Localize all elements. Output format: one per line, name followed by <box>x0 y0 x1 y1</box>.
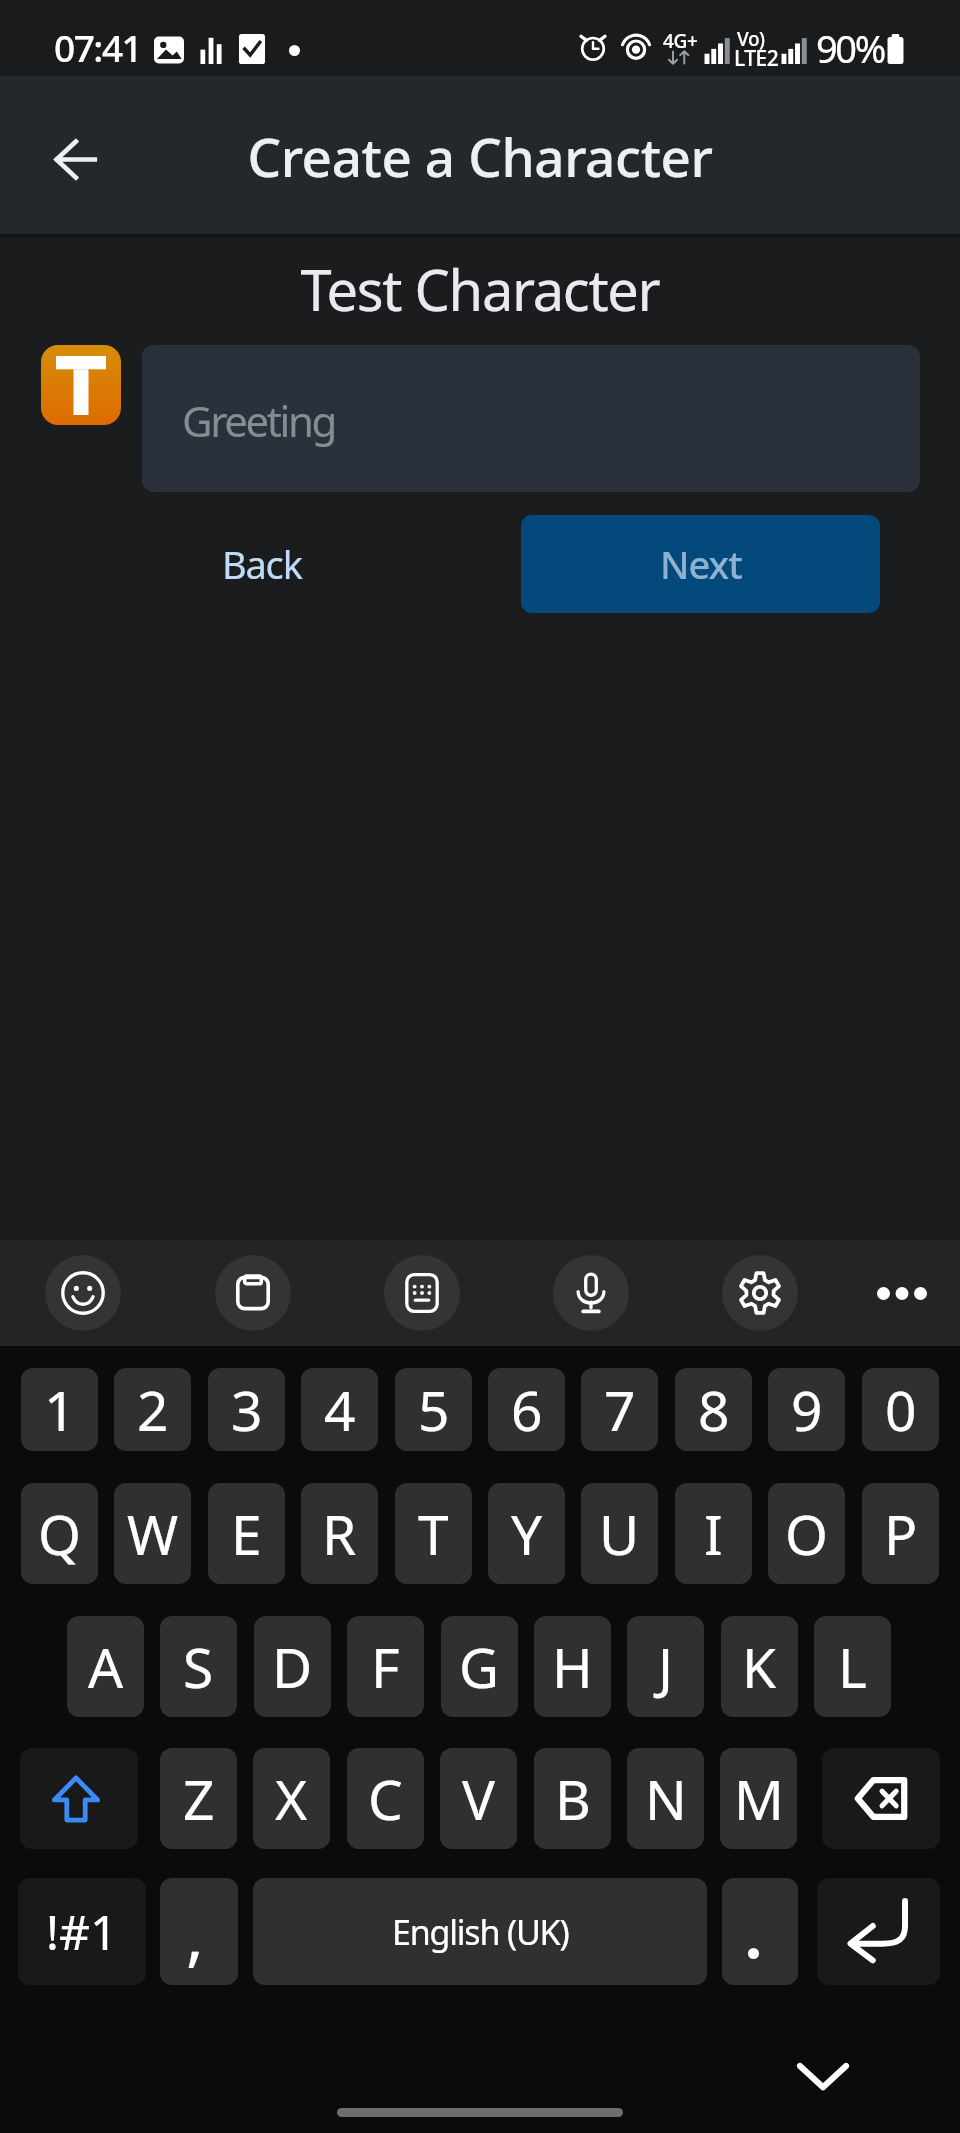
button[interactable]: Keyboard layout <box>384 1255 460 1331</box>
staticText: English (UK) <box>392 1909 569 1955</box>
button[interactable]: V <box>440 1748 517 1849</box>
button[interactable]: Next <box>521 515 880 613</box>
staticText: C <box>368 1761 403 1836</box>
button[interactable]: U <box>581 1483 658 1584</box>
staticText: LTE2 <box>734 44 779 73</box>
staticText: U <box>599 1496 640 1571</box>
staticText: 0 <box>885 1372 917 1447</box>
button[interactable]: D <box>254 1616 331 1717</box>
button[interactable]: 0 <box>862 1368 939 1451</box>
button[interactable]: H <box>534 1616 611 1717</box>
staticText: S <box>183 1629 214 1704</box>
staticText: 90% <box>816 22 884 74</box>
button[interactable]: Back <box>28 112 122 206</box>
button[interactable]: 7 <box>581 1368 658 1451</box>
staticText: 4G+ <box>663 28 698 54</box>
button[interactable]: A <box>67 1616 144 1717</box>
button[interactable]: 9 <box>768 1368 845 1451</box>
button[interactable]: Backspace <box>822 1748 940 1849</box>
staticText: R <box>322 1496 357 1571</box>
button[interactable]: W <box>114 1483 191 1584</box>
button[interactable]: E <box>208 1483 285 1584</box>
staticText: Test Character <box>0 251 960 327</box>
staticText: Greeting <box>182 392 336 449</box>
staticText: I <box>704 1496 723 1571</box>
staticText: O <box>785 1496 828 1571</box>
button[interactable]: Greeting <box>142 345 920 492</box>
staticText: 2 <box>137 1372 169 1447</box>
button[interactable]: Q <box>21 1483 98 1584</box>
staticText: A <box>88 1629 124 1704</box>
staticText: Vo) <box>737 26 765 52</box>
button[interactable]: Emoji <box>45 1255 121 1331</box>
staticText: 5 <box>418 1372 450 1447</box>
staticText: 1 <box>44 1372 76 1447</box>
staticText: W <box>127 1496 179 1571</box>
staticText: L <box>838 1629 867 1704</box>
staticText: K <box>742 1629 777 1704</box>
button[interactable]: F <box>347 1616 424 1717</box>
button[interactable]: Y <box>488 1483 565 1584</box>
staticText: T <box>418 1496 449 1571</box>
staticText: 8 <box>698 1372 730 1447</box>
staticText: F <box>371 1629 400 1704</box>
button[interactable]: Voice input <box>553 1255 629 1331</box>
button[interactable]: B <box>534 1748 611 1849</box>
staticText: Y <box>511 1496 543 1571</box>
button[interactable]: T <box>395 1483 472 1584</box>
staticText: X <box>275 1761 308 1836</box>
staticText: Create a Character <box>0 120 960 192</box>
button[interactable]: English (UK) <box>253 1878 707 1985</box>
staticText: 7 <box>604 1372 636 1447</box>
button[interactable]: C <box>347 1748 424 1849</box>
button[interactable]: Clipboard <box>215 1255 291 1331</box>
button[interactable]: Period <box>722 1878 798 1985</box>
button[interactable]: J <box>627 1616 704 1717</box>
button[interactable]: 5 <box>395 1368 472 1451</box>
button[interactable]: X <box>253 1748 330 1849</box>
staticText: M <box>734 1761 784 1836</box>
button[interactable]: S <box>160 1616 237 1717</box>
staticText: N <box>645 1761 687 1836</box>
button[interactable]: Enter <box>817 1878 940 1985</box>
staticText: Next <box>660 538 742 590</box>
button[interactable]: M <box>720 1748 797 1849</box>
staticText: !#1 <box>46 1899 118 1964</box>
staticText: , <box>186 1889 204 1979</box>
button[interactable]: G <box>441 1616 518 1717</box>
staticText: B <box>555 1761 591 1836</box>
staticText: 07:41 <box>54 22 142 72</box>
staticText: 9 <box>791 1372 823 1447</box>
staticText: Back <box>222 538 302 590</box>
button[interactable]: !#1 <box>18 1878 146 1985</box>
button[interactable]: 8 <box>675 1368 752 1451</box>
button[interactable]: R <box>301 1483 378 1584</box>
button[interactable]: I <box>675 1483 752 1584</box>
button[interactable]: L <box>814 1616 891 1717</box>
staticText: Q <box>38 1496 81 1571</box>
button[interactable]: 2 <box>114 1368 191 1451</box>
button[interactable]: 1 <box>21 1368 98 1451</box>
button[interactable]: O <box>768 1483 845 1584</box>
button[interactable]: Back <box>163 515 360 613</box>
staticText: 6 <box>511 1372 543 1447</box>
staticText: 4 <box>324 1372 356 1447</box>
button[interactable]: , <box>160 1878 238 1985</box>
staticText: E <box>231 1496 262 1571</box>
button[interactable]: N <box>627 1748 704 1849</box>
button[interactable]: Z <box>160 1748 237 1849</box>
button[interactable]: Shift <box>20 1748 138 1849</box>
button[interactable]: Settings <box>722 1255 798 1331</box>
staticText: H <box>552 1629 593 1704</box>
staticText: D <box>272 1629 313 1704</box>
button[interactable]: More options <box>864 1255 940 1331</box>
staticText: P <box>884 1496 918 1571</box>
staticText: J <box>658 1629 674 1704</box>
button[interactable]: K <box>721 1616 798 1717</box>
button[interactable]: 6 <box>488 1368 565 1451</box>
button[interactable]: P <box>862 1483 939 1584</box>
button[interactable]: Hide keyboard <box>782 2035 864 2117</box>
staticText: Z <box>183 1761 215 1836</box>
button[interactable]: 4 <box>301 1368 378 1451</box>
button[interactable]: 3 <box>208 1368 285 1451</box>
